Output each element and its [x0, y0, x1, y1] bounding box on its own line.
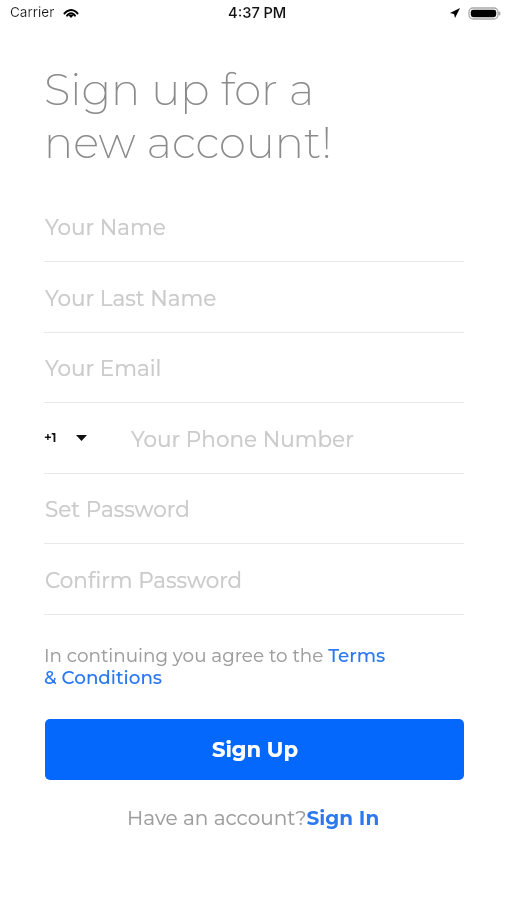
- staticText: Carrier: [10, 4, 55, 20]
- staticText: Your Phone Number: [131, 426, 354, 452]
- staticText: Have an account?Sign In: [127, 806, 380, 830]
- button[interactable]: Select country code: [44, 429, 87, 445]
- staticText: 4:37 PM: [228, 4, 287, 22]
- other: Location: [450, 8, 460, 18]
- button[interactable]: Have an account?Sign In: [127, 806, 380, 830]
- button[interactable]: Your Name: [44, 191, 464, 262]
- staticText: In continuing you agree to the Terms & C…: [44, 644, 394, 689]
- button[interactable]: Sign Up: [45, 719, 464, 780]
- staticText: Set Password: [45, 496, 190, 522]
- button[interactable]: Confirm Password: [44, 544, 464, 615]
- staticText: Sign Up: [212, 737, 298, 763]
- button[interactable]: Set Password: [44, 473, 464, 544]
- staticText: Your Email: [45, 355, 162, 381]
- staticText: Sign up for a new account!: [44, 63, 332, 169]
- staticText: Your Name: [45, 214, 166, 240]
- button[interactable]: Your Last Name: [44, 262, 464, 333]
- staticText: Your Last Name: [45, 285, 217, 311]
- staticText: +1: [44, 429, 57, 445]
- staticText: Confirm Password: [45, 567, 243, 593]
- button[interactable]: Your Email: [44, 332, 464, 403]
- other: Battery full: [469, 8, 500, 19]
